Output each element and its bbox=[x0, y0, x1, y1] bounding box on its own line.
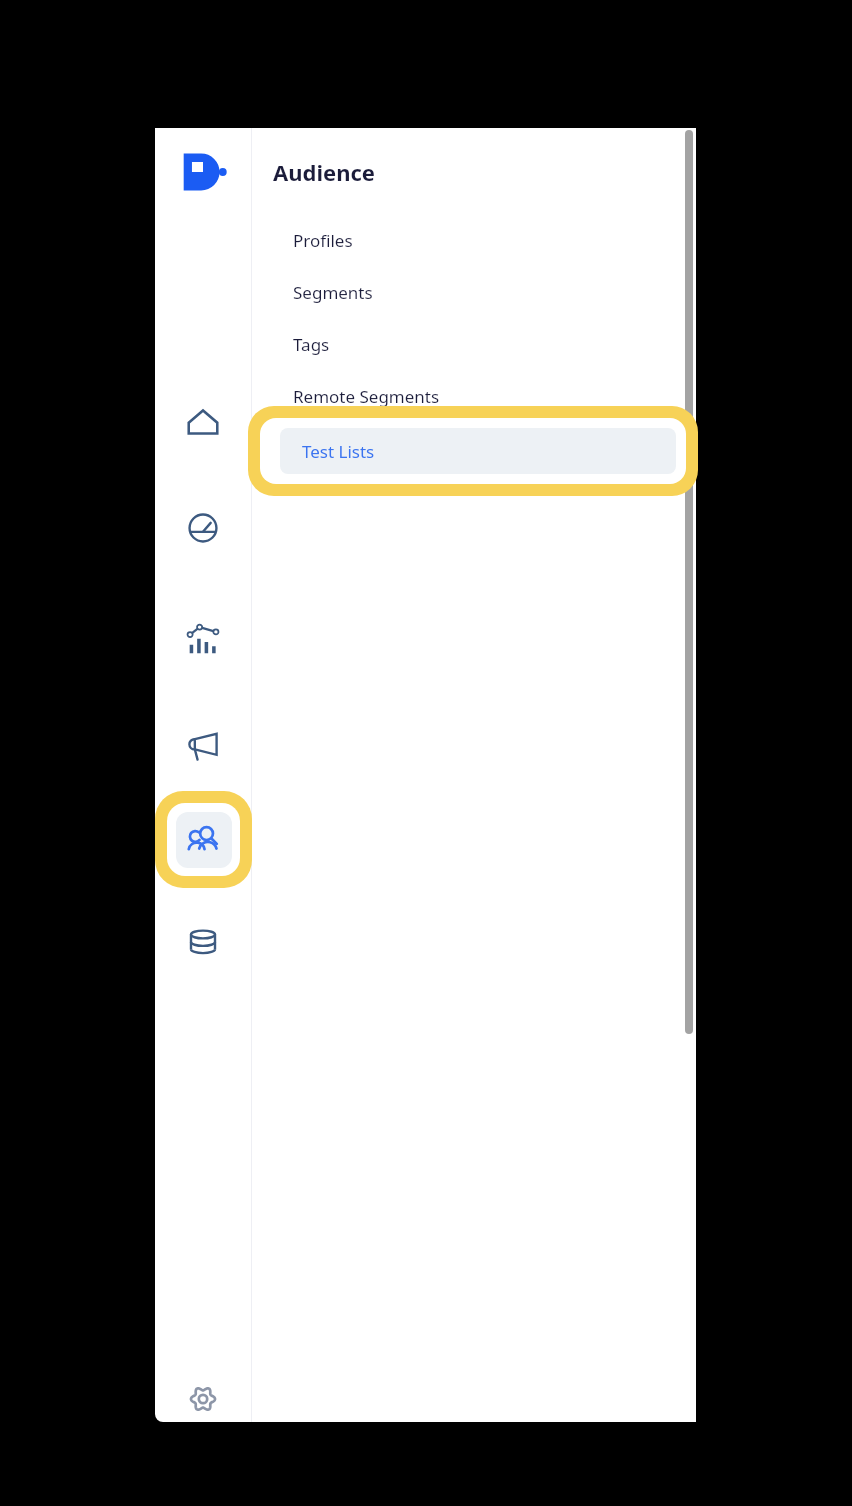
button[interactable]: Segments bbox=[273, 266, 696, 318]
button[interactable]: Home bbox=[179, 398, 227, 446]
button[interactable]: Content bbox=[179, 828, 227, 876]
button[interactable]: Remote Segments bbox=[273, 370, 696, 422]
staticText: Profiles bbox=[293, 229, 353, 252]
button[interactable]: Profiles bbox=[273, 214, 696, 266]
staticText: Audience bbox=[273, 157, 375, 187]
staticText: Test Lists bbox=[288, 436, 361, 459]
button[interactable]: Test Lists bbox=[268, 425, 679, 469]
staticText: Test Lists bbox=[302, 440, 375, 463]
staticText: Remote Segments bbox=[293, 385, 440, 408]
button[interactable]: Audience bbox=[176, 805, 230, 859]
button[interactable]: Campaigns bbox=[179, 722, 227, 770]
button[interactable]: Analytics bbox=[179, 614, 227, 662]
staticText: Segments bbox=[293, 281, 373, 304]
button[interactable]: Dashboard bbox=[179, 504, 227, 552]
staticText: Tags bbox=[293, 333, 330, 356]
button[interactable]: Tags bbox=[273, 318, 696, 370]
button[interactable]: Home logo bbox=[179, 148, 227, 196]
button[interactable]: Data bbox=[179, 918, 227, 966]
button[interactable]: Settings bbox=[179, 1375, 227, 1422]
